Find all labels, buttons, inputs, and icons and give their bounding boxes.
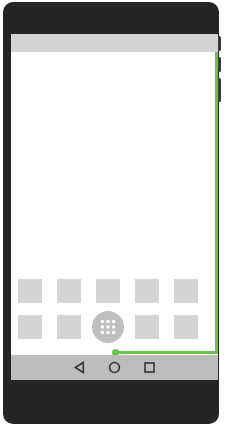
button[interactable]: All apps	[92, 311, 124, 343]
other: Volume down	[216, 78, 221, 102]
other: Power button	[216, 36, 221, 51]
button[interactable]: Recent apps	[139, 357, 160, 378]
button[interactable]: Home	[104, 357, 125, 378]
other: Volume up	[216, 57, 221, 72]
button[interactable]: Back	[69, 357, 90, 378]
